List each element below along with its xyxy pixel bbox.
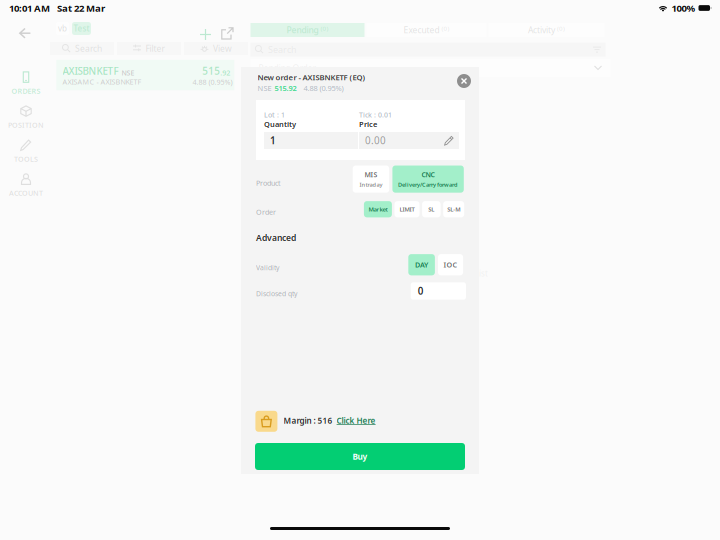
button[interactable]: vb (56, 22, 69, 35)
staticText: 100% (671, 1, 695, 15)
button[interactable]: Back (12, 21, 38, 45)
button[interactable]: ORDERS (0, 70, 52, 97)
staticText: (0) (320, 24, 328, 33)
staticText: New order - AXISBNKETF (EQ) (257, 72, 365, 82)
staticText: Executed (403, 24, 439, 36)
staticText: View (213, 43, 232, 54)
button[interactable]: Test (72, 22, 91, 35)
staticText: DAY (415, 260, 428, 270)
button[interactable]: POSITION (0, 104, 52, 131)
staticText: 4.88 (0.95%) (192, 77, 232, 87)
staticText: SL-M (447, 205, 460, 213)
button[interactable]: SL (422, 201, 441, 217)
staticText: Sat 22 Mar (57, 1, 105, 15)
staticText: 4.88 (0.95%) (303, 83, 343, 93)
button[interactable]: SL-M (443, 201, 464, 217)
staticText: Price (359, 119, 377, 129)
staticText: Intraday (359, 181, 382, 188)
button[interactable]: Buy (255, 443, 465, 470)
button[interactable]: LIMIT (394, 201, 419, 217)
button[interactable]: IOC (438, 254, 463, 275)
staticText: Validity (256, 263, 279, 272)
staticText: 1 (270, 134, 276, 147)
staticText: LIMIT (399, 205, 414, 213)
staticText: ORDERS (11, 86, 40, 96)
button[interactable]: Activity (488, 23, 604, 37)
staticText: Search (268, 43, 297, 56)
staticText: 0 (418, 284, 424, 298)
staticText: Activity (528, 24, 555, 36)
staticText: AXISBNKETF (63, 64, 119, 78)
staticText: NSE (257, 83, 271, 93)
button[interactable]: View (184, 42, 248, 55)
staticText: Pending Order (258, 62, 316, 74)
staticText: Market (368, 205, 387, 213)
staticText: .92 (220, 68, 230, 78)
button[interactable]: ACCOUNT (0, 172, 52, 199)
button[interactable]: Search (50, 42, 114, 55)
staticText: Quantity (264, 119, 296, 129)
button[interactable]: Executed (366, 23, 486, 37)
staticText: SL (428, 205, 434, 213)
staticText: Margin : 516 (284, 415, 333, 426)
button[interactable]: DAY (408, 254, 435, 275)
staticText: Pending (286, 24, 318, 36)
button[interactable]: Market (364, 201, 392, 217)
button[interactable]: Filter (117, 42, 181, 55)
staticText: Filter (145, 43, 165, 54)
staticText: vb (58, 23, 67, 34)
staticText: Product (256, 178, 281, 188)
staticText: Search (75, 43, 102, 54)
staticText: 10:01 AM (9, 1, 50, 15)
staticText: Advanced (256, 232, 296, 244)
staticText: CNC (422, 170, 435, 179)
staticText: (0) (441, 24, 449, 33)
staticText: MIS (364, 170, 377, 179)
button[interactable]: Share (216, 22, 239, 45)
staticText: Delivery/Carry forward (398, 181, 458, 188)
button[interactable]: Add (195, 24, 216, 45)
staticText: POSITION (8, 120, 44, 130)
button[interactable]: TOOLS (0, 138, 52, 165)
staticText: AXISAMC - AXISBNKETF (63, 77, 142, 87)
staticText: 0.00 (365, 134, 386, 147)
button[interactable]: Close (453, 70, 475, 92)
button[interactable]: CNC (392, 165, 464, 193)
staticText: Order (256, 207, 276, 217)
button[interactable]: Pending (250, 23, 364, 37)
staticText: List (475, 268, 488, 279)
staticText: 515.92 (274, 83, 296, 93)
staticText: Lot : 1 (264, 110, 285, 119)
staticText: Test (73, 23, 89, 34)
button[interactable]: MIS (353, 165, 389, 193)
staticText: (0) (557, 24, 565, 33)
staticText: Buy (352, 451, 367, 462)
button[interactable]: Click Here (337, 415, 376, 426)
staticText: ACCOUNT (9, 188, 43, 198)
staticText: Tick : 0.01 (359, 110, 392, 119)
staticText: Disclosed qty (256, 289, 297, 298)
staticText: NSE (122, 68, 135, 78)
staticText: Click Here (337, 415, 376, 426)
staticText: 515 (202, 64, 220, 78)
staticText: TOOLS (14, 154, 38, 164)
staticText: IOC (444, 260, 458, 270)
